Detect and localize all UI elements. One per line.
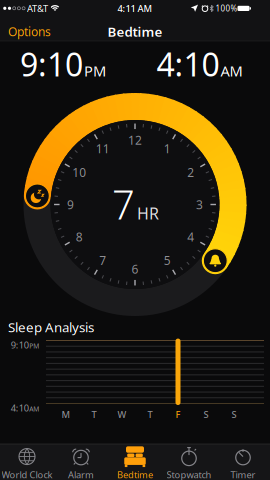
staticText: Stopwatch [166,469,211,480]
staticText: 9:10 [11,339,29,351]
staticText: 7 [112,177,135,230]
staticText: 12 [128,132,142,148]
staticText: Bedtime [107,23,162,40]
staticText: S [203,408,208,420]
staticText: 4:10 [11,402,29,414]
button[interactable]: Stopwatch [162,444,216,480]
staticText: Bedtime [117,469,153,480]
staticText: 10 [72,164,86,180]
staticText: HR [137,203,159,224]
staticText: AM [220,61,242,80]
button[interactable]: Timer [216,444,270,480]
staticText: AM [29,404,39,413]
staticText: 3 [196,196,203,212]
button[interactable]: Alarm [54,444,108,480]
staticText: 9:10 [20,43,83,85]
staticText: 8 [76,229,83,245]
staticText: 7 [99,252,106,268]
staticText: 4:10 [156,43,219,85]
staticText: S [231,408,236,420]
staticText: Sleep Analysis [8,318,94,336]
staticText: F [175,408,180,420]
staticText: W [117,408,126,420]
staticText: T [91,408,96,420]
staticText: Options [8,23,51,39]
staticText: T [147,408,152,420]
staticText: 1 [164,141,171,157]
button[interactable]: Bedtime [108,444,162,480]
button[interactable]: Wake [203,249,227,273]
staticText: 2 [187,164,194,180]
button[interactable]: Bedtime [25,184,49,208]
staticText: Alarm [68,469,94,480]
staticText: 100% [215,3,237,14]
button[interactable]: World Clock [0,444,54,480]
staticText: Timer [230,469,255,480]
staticText: World Clock [1,469,52,480]
staticText: M [61,408,70,420]
staticText: 11 [96,141,110,157]
staticText: PM [29,341,39,350]
staticText: 4 [187,229,194,245]
staticText: 5 [164,252,171,268]
button[interactable]: Options [8,23,51,39]
staticText: 6 [131,261,138,277]
staticText: 4:11 AM [117,2,152,14]
staticText: AT&T [27,2,48,14]
staticText: 9 [67,196,74,212]
staticText: PM [84,61,106,80]
